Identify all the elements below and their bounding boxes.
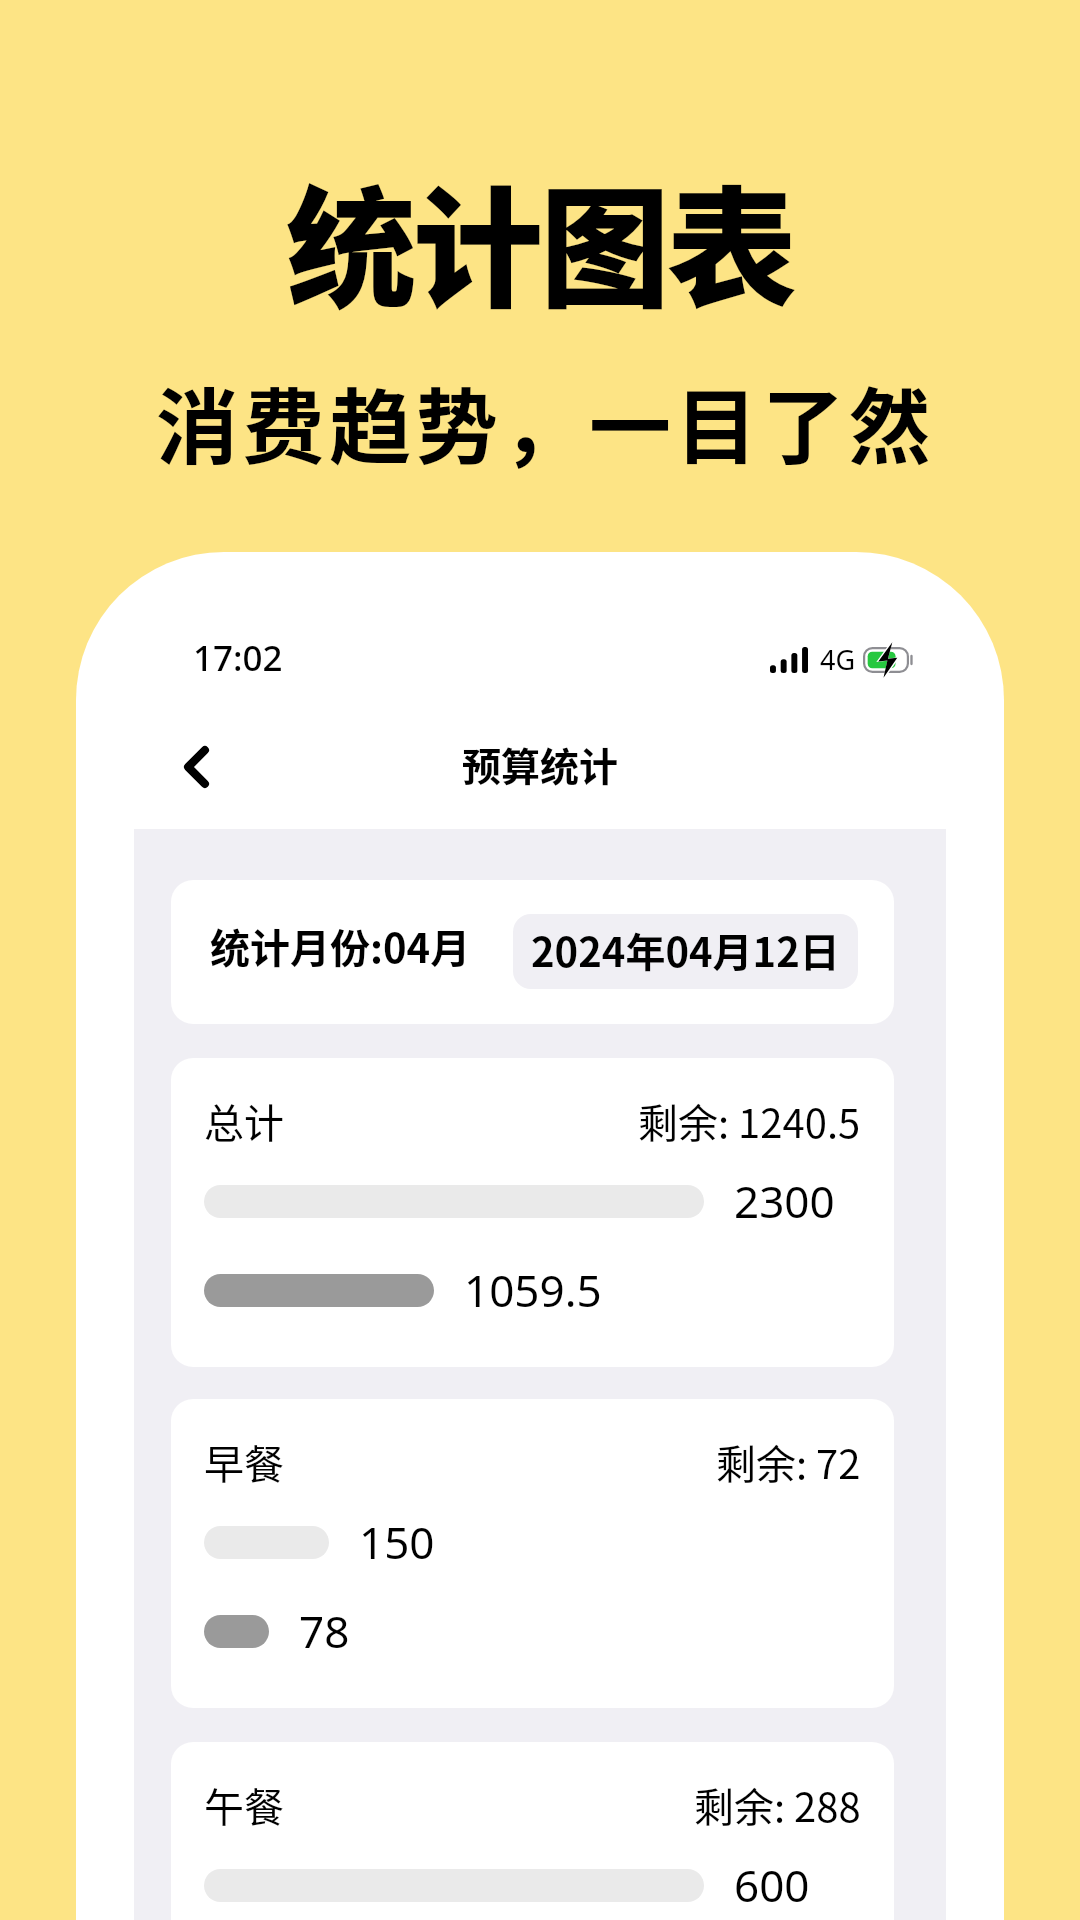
staticText: 消费趋势，一目了然: [156, 362, 936, 481]
staticText: 1059.5: [464, 1260, 602, 1320]
staticText: 600: [734, 1855, 810, 1915]
button[interactable]: Back: [136, 712, 256, 822]
staticText: 预算统计: [462, 736, 619, 792]
button[interactable]: 早餐: [171, 1399, 894, 1708]
staticText: 早餐: [204, 1433, 284, 1491]
button[interactable]: 2024年04月12日: [513, 914, 858, 989]
staticText: 78: [299, 1601, 350, 1661]
staticText: 午餐: [204, 1776, 284, 1834]
staticText: 2300: [734, 1171, 835, 1231]
staticText: 剩余: 288: [694, 1776, 861, 1834]
other: Signal strength: [770, 647, 808, 673]
button[interactable]: 午餐: [171, 1742, 894, 1920]
staticText: 统计图表: [286, 145, 795, 333]
staticText: 剩余: 1240.5: [638, 1092, 861, 1150]
button[interactable]: 总计: [171, 1058, 894, 1367]
staticText: 总计: [204, 1092, 284, 1150]
staticText: 统计月份:04月: [210, 917, 471, 975]
button[interactable]: 统计月份:04月: [171, 880, 894, 1024]
staticText: 17:02: [193, 634, 283, 682]
staticText: 150: [359, 1512, 435, 1572]
other: Battery charging: [863, 647, 915, 673]
staticText: 4G: [820, 641, 856, 678]
staticText: 2024年04月12日: [531, 921, 840, 979]
staticText: 剩余: 72: [716, 1433, 861, 1491]
